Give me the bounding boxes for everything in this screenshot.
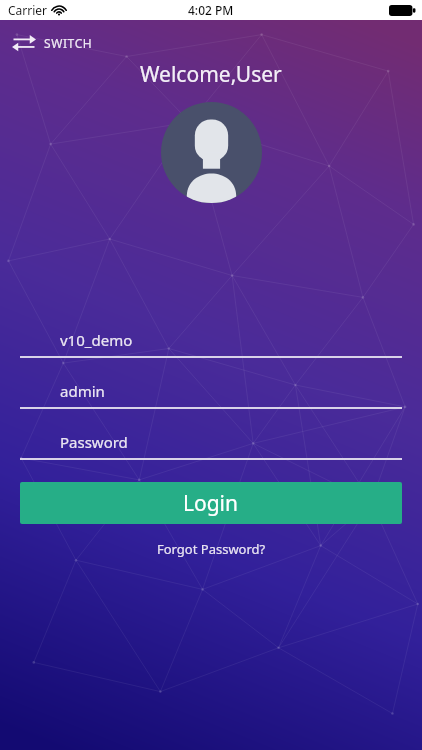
button[interactable]: v10_demo xyxy=(0,323,422,358)
staticText: v10_demo xyxy=(60,330,133,350)
button[interactable]: SWITCH xyxy=(4,28,101,58)
button[interactable]: admin xyxy=(0,374,422,409)
staticText: 4:02 PM xyxy=(188,2,234,18)
button[interactable]: Forgot Password? xyxy=(147,536,276,562)
staticText: Login xyxy=(183,489,239,518)
button[interactable]: Login xyxy=(20,482,402,524)
button[interactable]: Password xyxy=(0,425,422,460)
staticText: SWITCH xyxy=(44,35,93,51)
staticText: Forgot Password? xyxy=(157,540,266,558)
staticText: admin xyxy=(60,381,105,401)
staticText: Welcome,User xyxy=(140,60,282,89)
staticText: Carrier xyxy=(8,2,48,18)
staticText: Password xyxy=(60,432,128,452)
